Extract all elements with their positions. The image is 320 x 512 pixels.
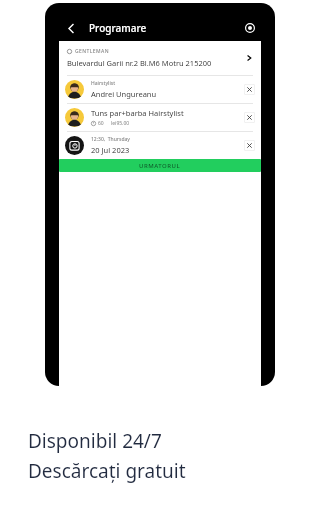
staticText: Descărcați gratuit xyxy=(28,458,186,484)
staticText: Andrei Ungureanu xyxy=(91,89,157,99)
staticText: GENTLEMAN xyxy=(75,48,109,55)
staticText: Disponibil 24/7 xyxy=(28,428,162,454)
button[interactable]: 12:30, Thursday xyxy=(59,132,261,159)
button[interactable]: Back xyxy=(61,18,81,38)
staticText: lei95.00 xyxy=(111,120,130,127)
staticText: Hairstylist xyxy=(91,80,116,87)
staticText: 12:30, Thursday xyxy=(91,136,130,143)
staticText: 60 xyxy=(98,120,104,127)
staticText: 20 Jul 2023 xyxy=(91,145,130,155)
button[interactable]: Hairstylist xyxy=(59,76,261,103)
button[interactable]: URMATORUL xyxy=(59,159,261,172)
button[interactable]: Remove xyxy=(244,140,255,151)
button[interactable]: Tuns par+barba Hairstylist xyxy=(59,104,261,131)
button[interactable]: Help xyxy=(241,19,259,37)
button[interactable]: Remove xyxy=(244,84,255,95)
staticText: URMATORUL xyxy=(139,162,181,170)
staticText: Tuns par+barba Hairstylist xyxy=(91,108,184,118)
staticText: Bulevardul Garii nr.2 Bl.M6 Motru 215200 xyxy=(67,58,212,68)
staticText: Programare xyxy=(89,21,147,35)
button[interactable]: Remove xyxy=(244,112,255,123)
button[interactable]: GENTLEMAN xyxy=(59,41,261,75)
